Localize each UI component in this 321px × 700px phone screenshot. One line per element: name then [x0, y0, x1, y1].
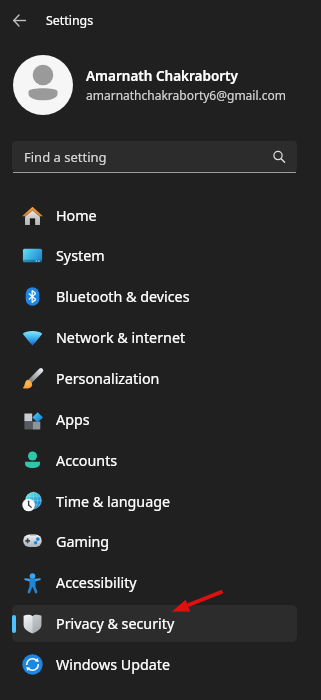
staticText: System [56, 246, 105, 265]
button[interactable]: System [12, 237, 297, 274]
button[interactable]: Time & language [12, 483, 297, 520]
staticText: Home [56, 206, 97, 225]
button[interactable]: Bluetooth & devices [12, 278, 297, 315]
staticText: amarnathchakraborty6@gmail.com [86, 87, 286, 103]
staticText: Network & internet [56, 328, 186, 347]
staticText: Find a setting [24, 148, 107, 166]
staticText: Settings [46, 12, 94, 29]
button[interactable]: Accounts [12, 442, 297, 479]
button[interactable]: Privacy & security [12, 605, 297, 642]
button[interactable]: Accessibility [12, 564, 297, 601]
staticText: Windows Update [56, 655, 171, 674]
staticText: Personalization [56, 369, 160, 388]
staticText: Amarnath Chakraborty [86, 67, 238, 85]
staticText: Time & language [56, 492, 171, 511]
button[interactable]: Account picture [13, 55, 73, 115]
staticText: Accessibility [56, 573, 137, 592]
staticText: Bluetooth & devices [56, 287, 190, 306]
staticText: Accounts [56, 451, 118, 470]
button[interactable]: Windows Update [12, 646, 297, 683]
button[interactable]: Gaming [12, 523, 297, 560]
button[interactable]: Apps [12, 401, 297, 438]
button[interactable]: Find a setting [12, 141, 297, 172]
staticText: Gaming [56, 532, 110, 551]
button[interactable]: Network & internet [12, 319, 297, 356]
staticText: Apps [56, 410, 90, 429]
staticText: Privacy & security [56, 614, 175, 633]
button[interactable]: Personalization [12, 360, 297, 397]
button[interactable]: Home [12, 197, 297, 234]
button[interactable]: Back [4, 5, 35, 36]
